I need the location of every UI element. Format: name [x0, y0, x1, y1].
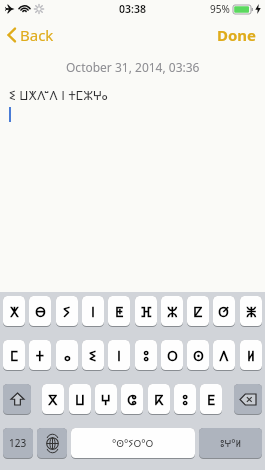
button[interactable]: ⵖ: [95, 384, 117, 414]
staticText: ⵇ: [193, 302, 203, 321]
staticText: ⵅ: [10, 302, 19, 321]
staticText: ⴽ: [154, 390, 164, 409]
staticText: Back: [20, 25, 54, 45]
staticText: ⴳ: [48, 390, 58, 409]
button[interactable]: ⵓⵖ°ⵍ: [199, 428, 262, 458]
staticText: ⴰ: [64, 346, 71, 365]
button[interactable]: ⴷ: [213, 340, 235, 370]
button[interactable]: Done: [217, 25, 257, 45]
staticText: ⵓ: [143, 346, 150, 365]
button[interactable]: [37, 428, 67, 458]
button[interactable]: ⵢ: [56, 296, 78, 326]
staticText: ⵙ: [193, 346, 204, 365]
staticText: ⵥ: [246, 302, 257, 321]
button[interactable]: ⵔ: [161, 340, 183, 370]
staticText: ⵍ: [247, 346, 255, 365]
staticText: ⵖ: [101, 390, 111, 409]
button[interactable]: ⵡ: [69, 384, 91, 414]
button[interactable]: ⴱ: [29, 296, 51, 326]
staticText: ⵢ: [63, 302, 71, 321]
staticText: ⵡ: [75, 390, 85, 409]
staticText: ⴼ: [141, 302, 152, 321]
button[interactable]: °ⵙ°ⵢⵔ°ⵔ: [71, 428, 195, 458]
button[interactable]: Back: [7, 25, 54, 45]
staticText: ⵣ: [167, 302, 178, 321]
button[interactable]: ⵜ: [29, 340, 51, 370]
button[interactable]: ⵟ: [108, 296, 130, 326]
button[interactable]: ⵎ: [3, 340, 25, 370]
staticText: 95%: [210, 2, 230, 16]
button[interactable]: [234, 384, 262, 414]
button[interactable]: ⴼ: [135, 296, 157, 326]
button[interactable]: ⵙ: [187, 340, 209, 370]
staticText: ⴹ: [207, 390, 216, 409]
staticText: ⵎ: [10, 346, 19, 365]
button[interactable]: ⵇ: [187, 296, 209, 326]
button[interactable]: ⵛ: [121, 384, 143, 414]
button[interactable]: ⵣ: [161, 296, 183, 326]
button[interactable]: ⵚ: [213, 296, 235, 326]
button[interactable]: ⵓ: [174, 384, 196, 414]
staticText: ⵏ: [117, 346, 121, 365]
staticText: °ⵙ°ⵢⵔ°ⵔ: [112, 436, 154, 450]
staticText: ⴱ: [35, 302, 46, 321]
button[interactable]: [3, 384, 31, 414]
button[interactable]: ⵏ: [108, 340, 130, 370]
staticText: 123: [9, 436, 27, 450]
button[interactable]: 123: [3, 428, 33, 458]
button[interactable]: ⵏ: [82, 296, 104, 326]
staticText: ⵛ: [127, 390, 138, 409]
button[interactable]: ⴽ: [148, 384, 170, 414]
staticText: ⵟ: [115, 302, 124, 321]
staticText: ⵏ: [91, 302, 95, 321]
staticText: 03:38: [119, 2, 146, 16]
staticText: ⵚ: [218, 302, 230, 321]
button[interactable]: ⴰ: [56, 340, 78, 370]
button[interactable]: ⵍ: [240, 340, 262, 370]
staticText: ⵓⵖ°ⵍ: [220, 436, 242, 450]
staticText: ⵓ: [182, 390, 189, 409]
button[interactable]: ⵓ: [135, 340, 157, 370]
button[interactable]: ⵥ: [240, 296, 262, 326]
staticText: ⵉ: [89, 346, 97, 365]
staticText: ⵔ: [167, 346, 178, 365]
button[interactable]: ⵉ: [82, 340, 104, 370]
button[interactable]: ⴳ: [42, 384, 64, 414]
staticText: ⴷ: [219, 346, 229, 365]
staticText: October 31, 2014, 03:36: [66, 59, 200, 75]
button[interactable]: ⵅ: [3, 296, 25, 326]
staticText: ⵜ: [36, 346, 44, 365]
button[interactable]: ⴹ: [200, 384, 222, 414]
staticText: ⵉ ⵡⵅⴷⵯⴷ ⵏ ⵜⵎⵣⵖⴰ: [9, 86, 108, 104]
